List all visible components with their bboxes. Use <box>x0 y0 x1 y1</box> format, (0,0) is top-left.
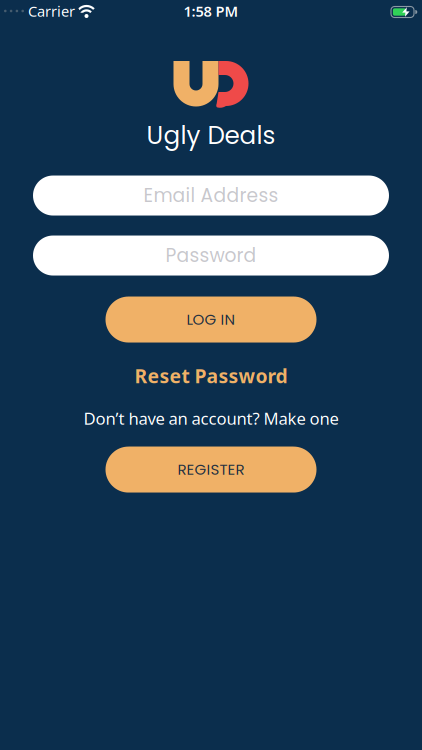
staticText: 1:58 PM <box>183 1 238 21</box>
staticText: Email Address <box>143 182 278 209</box>
staticText: Ugly Deals <box>146 118 275 152</box>
staticText: Password <box>165 242 256 269</box>
staticText: Don’t have an account? Make one <box>83 407 338 430</box>
staticText: Reset Password <box>134 362 287 389</box>
staticText: REGISTER <box>177 459 244 480</box>
staticText: LOG IN <box>186 309 235 330</box>
staticText: Carrier <box>28 1 75 21</box>
